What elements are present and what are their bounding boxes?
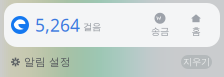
button[interactable]: 알림 설정	[0, 55, 71, 69]
staticText: 알림 설정	[24, 55, 71, 68]
staticText: 걸음	[83, 21, 101, 33]
staticText: 지우기	[183, 56, 210, 68]
button[interactable]: 홈	[178, 3, 214, 47]
staticText: 5,264	[35, 13, 80, 36]
button[interactable]: 지우기	[181, 55, 212, 69]
staticText: 홈	[191, 26, 200, 37]
staticText: 송금	[151, 26, 169, 37]
button[interactable]: 송금	[142, 3, 178, 47]
